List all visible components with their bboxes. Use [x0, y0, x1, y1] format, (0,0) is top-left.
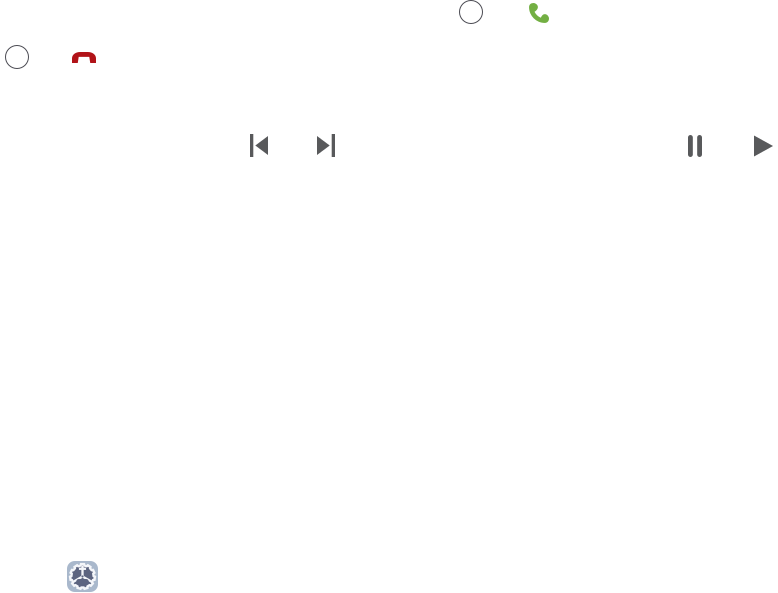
- button[interactable]: Previous track: [250, 134, 268, 157]
- button[interactable]: Next track: [317, 134, 335, 157]
- button[interactable]: Speaker: [5, 45, 29, 69]
- button[interactable]: Mute: [459, 0, 483, 24]
- button[interactable]: Pause: [688, 135, 702, 157]
- button[interactable]: End call: [72, 52, 96, 63]
- button[interactable]: Answer call: [528, 3, 549, 24]
- button[interactable]: Settings: [67, 561, 98, 592]
- button[interactable]: Play: [754, 135, 773, 156]
